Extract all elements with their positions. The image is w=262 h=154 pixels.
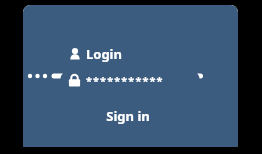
staticText: *********** <box>86 73 164 88</box>
staticText: Sign in <box>106 107 150 125</box>
staticText: Login <box>86 45 122 63</box>
button[interactable]: Sign in <box>92 105 163 127</box>
button[interactable]: *********** <box>60 70 200 91</box>
button[interactable]: Login <box>60 43 200 64</box>
